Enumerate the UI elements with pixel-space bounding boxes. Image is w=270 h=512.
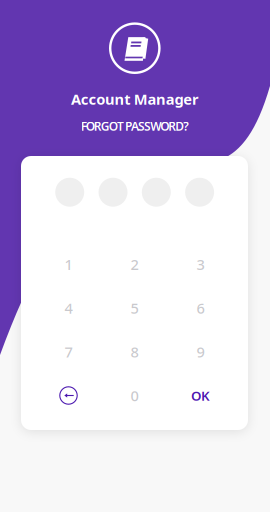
button[interactable]: 9 — [170, 331, 230, 373]
button[interactable]: 0 — [104, 374, 164, 416]
staticText: 1 — [64, 255, 72, 274]
button[interactable]: 8 — [104, 331, 164, 373]
staticText: 6 — [196, 298, 204, 318]
staticText: 7 — [64, 342, 72, 362]
staticText: 9 — [196, 342, 204, 362]
staticText: 2 — [130, 255, 138, 274]
button[interactable]: 2 — [104, 243, 164, 285]
staticText: Account Manager — [71, 89, 199, 109]
button[interactable]: Delete — [38, 374, 98, 416]
staticText: OK — [191, 387, 210, 404]
button[interactable]: FORGOT PASSWORD? — [0, 119, 270, 133]
button[interactable]: 7 — [38, 331, 98, 373]
button[interactable]: 5 — [104, 287, 164, 329]
staticText: 8 — [130, 342, 138, 362]
button[interactable]: 1 — [38, 243, 98, 285]
button[interactable]: 3 — [170, 243, 230, 285]
staticText: 5 — [130, 298, 138, 318]
button[interactable]: 6 — [170, 287, 230, 329]
staticText: 0 — [130, 386, 138, 405]
button[interactable]: 4 — [38, 287, 98, 329]
staticText: 3 — [196, 255, 204, 274]
staticText: 4 — [64, 298, 72, 318]
staticText: FORGOT PASSWORD? — [81, 118, 189, 134]
button[interactable]: OK — [170, 374, 230, 416]
